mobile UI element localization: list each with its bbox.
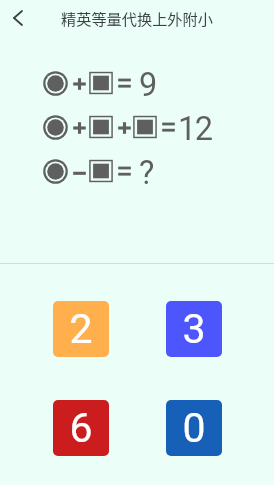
button[interactable]: 6 — [53, 400, 109, 456]
staticText: 12 — [178, 110, 212, 148]
button[interactable]: 3 — [166, 301, 222, 357]
staticText: 9 — [139, 66, 158, 104]
staticText: 2 — [69, 305, 93, 353]
button[interactable]: 2 — [53, 301, 109, 357]
staticText: 精英等量代换上外附小 — [61, 7, 213, 29]
button[interactable]: Back — [0, 0, 35, 36]
staticText: 0 — [182, 404, 206, 452]
staticText: 3 — [182, 305, 206, 353]
staticText: 6 — [69, 404, 93, 452]
staticText: ? — [139, 154, 155, 192]
button[interactable]: 0 — [166, 400, 222, 456]
